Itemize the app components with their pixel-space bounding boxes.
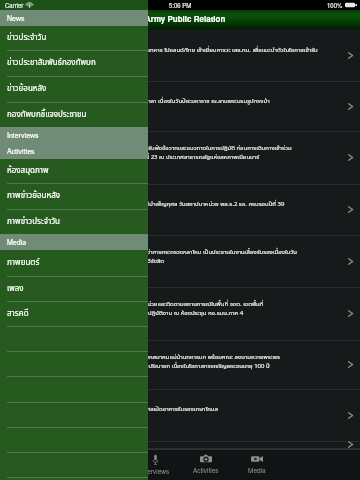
button[interactable]: Activities (0, 143, 148, 159)
button[interactable]: เพลง (0, 276, 148, 301)
button[interactable]: พลเอก อุดมเดช สีตบุตร ผบ.ทบ. เดินทางไปเป… (0, 185, 360, 236)
staticText: ถวายสมเด็จพระญาณสังวร สมเด็จพระสังฆราช ส… (8, 362, 270, 371)
button[interactable]: Activities (181, 454, 231, 478)
staticText: Interviews (140, 467, 170, 476)
button[interactable]: พลเอก อุดมเดช สีตบุตร ผบ.ทบ./รอง ผอ.รมน.… (0, 288, 360, 341)
staticText: พลเอก อุดมเดช สีตบุตร ผบ.ทบ. เดินทางเข้า… (8, 144, 292, 153)
button[interactable]: News (0, 10, 148, 26)
button[interactable]: ข่าวประจำวัน (0, 26, 148, 50)
staticText: Media (248, 466, 266, 475)
staticText: กองทัพบกชี้แจงประชาชน (7, 109, 87, 121)
button[interactable]: ภาพข่าวย้อนหลัง (0, 183, 148, 209)
staticText: Army Public Relation (145, 13, 226, 24)
staticText: ภาพยนตร์ (7, 257, 40, 269)
button[interactable]: สารคดี (0, 301, 148, 326)
staticText: News (7, 13, 25, 23)
staticText: ข่าวย้อนหลัง (7, 83, 47, 95)
staticText: พลเอก อุดมเดช สีตบุตร ผบ.ทบ. ให้การต้อนร… (8, 46, 318, 55)
staticText: ข่าวประจำวัน (7, 32, 47, 44)
button[interactable] (0, 427, 148, 452)
button[interactable] (0, 351, 148, 376)
button[interactable]: พลเอก อุดมเดช สีตบุตร ผบ.ทบ. มอบทุนการศึ… (0, 442, 360, 449)
staticText: รับผิดชอบของจังหวัดนราธิวาส และมอบนโยบาย… (8, 309, 244, 318)
button[interactable]: พลเอก อุดมเดช สีตบุตร ผบ.ทบ. เดินทางเข้า… (0, 132, 360, 185)
staticText: ห้องสมุดภาพ (7, 165, 49, 177)
button[interactable]: Press (78, 454, 128, 478)
staticText: ภาพข่าวย้อนหลัง (7, 190, 60, 202)
button[interactable]: ภาพยนตร์ (0, 250, 148, 276)
button[interactable]: ข่าวประชาสัมพันธ์กองทัพบก (0, 50, 148, 76)
staticText: Interviews (7, 130, 39, 140)
staticText: พลเอก อุดมเดช สีตบุตร ผบ.ทบ. เป็นประธานใ… (8, 97, 270, 106)
staticText: Activities (193, 466, 219, 475)
staticText: วันคล้ายวันสถาปนากองทัพบก ณ สโมสรทหารบก … (8, 257, 165, 266)
staticText: สารคดี (7, 308, 29, 320)
staticText: 100% (327, 1, 343, 10)
button[interactable]: กองทัพบกชี้แจงประชาชน (0, 102, 148, 127)
button[interactable]: พลเอก อุดมเดช สีตบุตร ผบ.ทบ. เป็นประธานใ… (0, 390, 360, 442)
button[interactable] (0, 326, 148, 351)
staticText: พลเอก อุดมเดช สีตบุตร และ ผศ.ดร.นราพร จั… (8, 353, 280, 362)
staticText: Media (7, 237, 27, 247)
staticText: ภาพข่าวประจำวัน (7, 216, 60, 228)
button[interactable]: News (27, 454, 77, 478)
button[interactable]: ภาพข่าวประจำวัน (0, 209, 148, 234)
button[interactable] (0, 376, 148, 402)
button[interactable] (0, 452, 148, 477)
button[interactable]: พลเอก อุดมเดช สีตบุตร ผบ.ทบ. ให้การต้อนร… (0, 31, 360, 82)
staticText: พลเอก อุดมเดช สีตบุตร ผบ.ทบ./รอง ผอ.รมน.… (8, 300, 264, 309)
button[interactable]: พลเอก ประวิตร วงษ์สุวรรณ รองนายกรัฐมนตรี… (0, 236, 360, 288)
staticText: พลเอก ประวิตร วงษ์สุวรรณ รองนายกรัฐมนตรี… (8, 248, 297, 257)
staticText: พลเอก อุดมเดช สีตบุตร ผบ.ทบ. เป็นประธานใ… (8, 405, 218, 414)
button[interactable]: ข่าวย้อนหลัง (0, 76, 148, 102)
staticText: การประชุมผู้บัญชาการทหารบกอาเซียนประเทศอ… (8, 153, 260, 162)
staticText: Carrier (5, 1, 24, 10)
button[interactable]: พลเอก อุดมเดช สีตบุตร ผบ.ทบ. เป็นประธานใ… (0, 82, 360, 132)
button[interactable]: Media (0, 234, 148, 250)
button[interactable]: Interviews (130, 454, 180, 478)
staticText: 5:06 PM (169, 1, 192, 10)
button[interactable]: พลเอก อุดมเดช สีตบุตร และ ผศ.ดร.นราพร จั… (0, 341, 360, 390)
staticText: Activities (7, 146, 35, 156)
staticText: เพลง (7, 283, 24, 295)
button[interactable] (0, 402, 148, 427)
button[interactable]: ห้องสมุดภาพ (0, 159, 148, 183)
staticText: ข่าวประชาสัมพันธ์กองทัพบก (7, 57, 96, 69)
button[interactable]: Media (232, 454, 282, 478)
button[interactable]: Interviews (0, 127, 148, 143)
button[interactable] (0, 477, 148, 480)
staticText: พลเอก อุดมเดช สีตบุตร ผบ.ทบ. เดินทางไปเป… (8, 200, 285, 209)
